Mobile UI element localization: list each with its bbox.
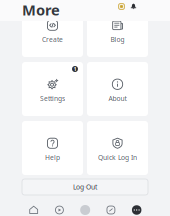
staticText: Log Out xyxy=(73,183,97,191)
staticText: Settings xyxy=(40,94,65,103)
button[interactable]: Notifications xyxy=(130,3,137,10)
staticText: 1 xyxy=(73,65,76,73)
button[interactable]: Settings xyxy=(22,62,83,116)
button[interactable]: Blog xyxy=(87,3,148,57)
staticText: Quick Log In xyxy=(98,153,137,162)
button[interactable]: Help xyxy=(22,121,83,175)
staticText: Help xyxy=(45,153,60,162)
button[interactable]: Quick Log In xyxy=(87,121,148,175)
staticText: Blog xyxy=(110,35,124,44)
staticText: More xyxy=(22,0,60,19)
button[interactable]: Home xyxy=(21,202,47,216)
button[interactable]: Rewards xyxy=(118,3,125,10)
button[interactable]: More xyxy=(124,202,150,216)
button[interactable]: Watch xyxy=(46,202,72,216)
button[interactable]: Create xyxy=(22,3,83,57)
button[interactable]: Log Out xyxy=(22,179,148,195)
button[interactable]: Messages xyxy=(98,202,124,216)
staticText: Create xyxy=(42,35,63,44)
button[interactable]: About xyxy=(87,62,148,116)
staticText: About xyxy=(108,94,126,103)
button[interactable]: Create xyxy=(72,202,98,216)
